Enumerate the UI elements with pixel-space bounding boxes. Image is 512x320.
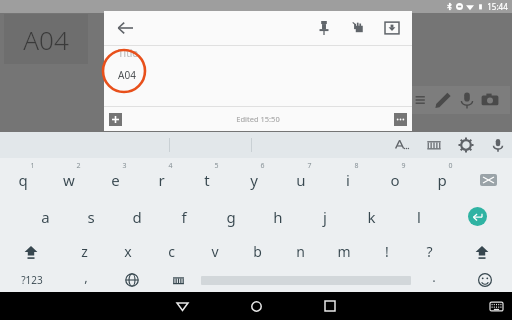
- staticText: 8: [354, 161, 359, 171]
- button[interactable]: Space: [201, 268, 411, 292]
- staticText: j: [323, 207, 327, 227]
- button[interactable]: f: [160, 198, 207, 235]
- staticText: 4: [168, 161, 173, 171]
- staticText: 15:44: [487, 1, 508, 12]
- staticText: !: [385, 242, 389, 261]
- staticText: m: [337, 242, 351, 261]
- staticText: o: [390, 170, 400, 190]
- staticText: a: [41, 207, 50, 227]
- button[interactable]: g: [207, 198, 254, 235]
- button[interactable]: Change language: [109, 268, 155, 292]
- staticText: y: [250, 170, 258, 190]
- staticText: 0: [448, 161, 453, 171]
- staticText: 5: [214, 161, 219, 171]
- staticText: h: [273, 207, 283, 227]
- button[interactable]: 4: [138, 158, 184, 198]
- button[interactable]: Keyboard layout: [155, 268, 201, 292]
- staticText: A04: [118, 68, 136, 82]
- button[interactable]: d: [114, 198, 160, 235]
- button[interactable]: h: [254, 198, 301, 235]
- button[interactable]: b: [236, 235, 279, 268]
- button[interactable]: 3: [92, 158, 138, 198]
- staticText: g: [226, 207, 236, 227]
- button[interactable]: n: [279, 235, 322, 268]
- button[interactable]: 2: [46, 158, 92, 198]
- button[interactable]: j: [301, 198, 348, 235]
- staticText: w: [63, 170, 75, 190]
- button[interactable]: Emoji: [457, 268, 512, 292]
- staticText: s: [87, 207, 95, 227]
- button[interactable]: c: [150, 235, 193, 268]
- button[interactable]: Add: [109, 113, 122, 126]
- staticText: ,: [84, 268, 88, 286]
- staticText: b: [253, 242, 262, 261]
- button[interactable]: Recent apps: [316, 292, 344, 320]
- button[interactable]: a: [22, 198, 68, 235]
- button[interactable]: Draw: [433, 90, 453, 110]
- staticText: .: [432, 268, 436, 286]
- button[interactable]: Record audio: [457, 90, 477, 110]
- staticText: l: [417, 207, 421, 227]
- staticText: 7: [307, 161, 312, 171]
- staticText: 1: [30, 161, 35, 171]
- staticText: p: [437, 170, 447, 190]
- button[interactable]: l: [395, 198, 442, 235]
- staticText: c: [168, 242, 175, 261]
- button[interactable]: Delete: [465, 158, 512, 198]
- staticText: 3: [122, 161, 127, 171]
- button[interactable]: s: [68, 198, 114, 235]
- staticText: ?: [426, 242, 433, 261]
- staticText: k: [367, 207, 376, 227]
- button[interactable]: k: [348, 198, 395, 235]
- button[interactable]: Home: [242, 292, 270, 320]
- button[interactable]: Pin note: [312, 16, 336, 40]
- button[interactable]: 5: [184, 158, 230, 198]
- button[interactable]: 6: [230, 158, 277, 198]
- button[interactable]: .: [411, 268, 457, 292]
- staticText: d: [132, 207, 142, 227]
- button[interactable]: 7: [277, 158, 324, 198]
- button[interactable]: Text style: [394, 137, 410, 153]
- staticText: f: [181, 207, 187, 227]
- button[interactable]: x: [106, 235, 150, 268]
- staticText: ?123: [21, 273, 43, 287]
- staticText: z: [81, 242, 88, 261]
- button[interactable]: m: [322, 235, 365, 268]
- button[interactable]: 9: [371, 158, 418, 198]
- button[interactable]: Settings: [458, 137, 474, 153]
- button[interactable]: z: [62, 235, 106, 268]
- button[interactable]: Clipboard: [426, 137, 442, 153]
- button[interactable]: !: [365, 235, 408, 268]
- staticText: Edited 15:50: [236, 114, 280, 124]
- button[interactable]: 1: [0, 158, 46, 198]
- button[interactable]: 0: [418, 158, 465, 198]
- button[interactable]: ,: [63, 268, 109, 292]
- button[interactable]: More options: [394, 113, 407, 126]
- staticText: v: [211, 242, 219, 261]
- button[interactable]: Reminder: [346, 16, 370, 40]
- button[interactable]: Enter: [442, 198, 512, 235]
- button[interactable]: Back: [112, 15, 138, 41]
- button[interactable]: Shift: [451, 235, 512, 268]
- button[interactable]: Voice input: [490, 137, 506, 153]
- staticText: A04: [23, 22, 69, 57]
- staticText: q: [18, 170, 28, 190]
- staticText: 9: [401, 161, 406, 171]
- button[interactable]: Take photo: [480, 90, 500, 110]
- button[interactable]: Archive: [380, 16, 404, 40]
- button[interactable]: Hide keyboard: [486, 296, 506, 316]
- staticText: u: [296, 170, 306, 190]
- button[interactable]: Shift: [0, 235, 62, 268]
- staticText: n: [296, 242, 305, 261]
- button[interactable]: ?: [408, 235, 451, 268]
- staticText: x: [124, 242, 132, 261]
- button[interactable]: Back: [168, 292, 196, 320]
- staticText: e: [111, 170, 120, 190]
- button[interactable]: ?123: [0, 268, 63, 292]
- staticText: Title: [118, 46, 138, 60]
- button[interactable]: v: [193, 235, 236, 268]
- button[interactable]: List: [410, 90, 430, 110]
- staticText: i: [346, 170, 350, 190]
- button[interactable]: 8: [324, 158, 371, 198]
- staticText: 2: [76, 161, 81, 171]
